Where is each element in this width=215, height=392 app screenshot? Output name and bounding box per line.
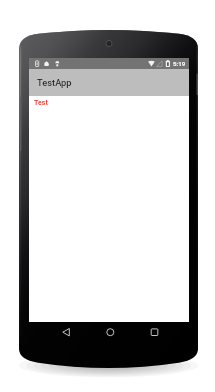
button[interactable]: Back <box>56 322 76 342</box>
staticText: 5:19 <box>173 60 186 67</box>
button[interactable]: TestApp <box>29 69 189 96</box>
button[interactable]: Home <box>100 322 120 342</box>
staticText: TestApp <box>37 77 72 88</box>
button[interactable]: Recent apps <box>144 322 164 342</box>
staticText: Test <box>34 99 48 107</box>
